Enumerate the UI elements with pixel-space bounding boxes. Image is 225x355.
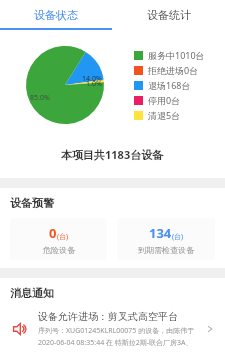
staticText: 拒绝进场0台 bbox=[148, 64, 199, 76]
button[interactable]: 设备状态 bbox=[0, 0, 112, 30]
button[interactable]: 134 bbox=[117, 218, 215, 260]
staticText: 1.0% bbox=[86, 79, 102, 89]
staticText: 设备允许进场：剪叉式高空平台 bbox=[38, 310, 178, 323]
staticText: 134 bbox=[149, 224, 172, 242]
staticText: 14.0% bbox=[82, 74, 102, 84]
staticText: (台) bbox=[172, 232, 184, 242]
staticText: (台) bbox=[57, 232, 69, 242]
button[interactable]: 0 bbox=[10, 218, 107, 260]
staticText: 停用0台 bbox=[148, 94, 181, 106]
staticText: 0 bbox=[49, 224, 57, 242]
staticText: 本项目共1183台设备 bbox=[61, 147, 164, 162]
staticText: 设备状态 bbox=[34, 8, 78, 22]
staticText: 危险设备 bbox=[43, 245, 75, 255]
staticText: 到期需检查设备 bbox=[138, 245, 194, 255]
staticText: 消息通知 bbox=[10, 286, 54, 300]
staticText: 设备预警 bbox=[10, 196, 54, 210]
staticText: 退场168台 bbox=[148, 79, 191, 91]
staticText: 服务中1010台 bbox=[148, 49, 205, 61]
other: 通知 bbox=[10, 319, 30, 339]
staticText: 85.0% bbox=[30, 93, 50, 103]
button[interactable]: 通知 bbox=[10, 310, 215, 347]
staticText: 设备统计 bbox=[147, 8, 191, 22]
staticText: 清退5台 bbox=[148, 109, 181, 121]
button[interactable]: 设备统计 bbox=[112, 0, 225, 30]
staticText: 序列号：XUG01245KLRL00075 的设备，由陈伟于 2020-06-0… bbox=[38, 326, 201, 347]
